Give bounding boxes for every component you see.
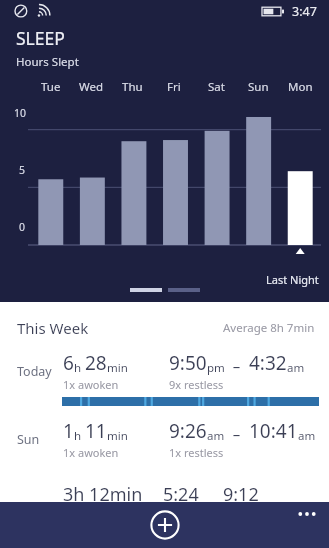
staticText: 6 (63, 350, 74, 376)
staticText: Thu (122, 79, 143, 95)
staticText: 5:24 (163, 482, 199, 507)
button[interactable]: Add sleep entry (145, 505, 185, 545)
staticText: min (107, 360, 128, 376)
staticText: am (298, 428, 316, 444)
staticText: am (287, 360, 305, 376)
button[interactable]: Today (0, 350, 329, 406)
staticText: 1x awoken (63, 377, 119, 392)
staticText: am (207, 428, 225, 444)
staticText: Mon (288, 79, 313, 95)
staticText: Wed (79, 79, 104, 95)
button[interactable]: 3h 12min (0, 482, 329, 507)
staticText: 1x awoken (63, 445, 119, 460)
staticText: – (225, 356, 249, 376)
staticText: – (225, 424, 249, 444)
staticText: Sun (17, 431, 40, 448)
staticText: h (74, 428, 85, 444)
staticText: Tue (41, 79, 61, 95)
staticText: 28 (85, 350, 107, 376)
staticText: SLEEP (16, 26, 65, 50)
staticText: 9x restless (169, 377, 224, 392)
button[interactable]: Sun (0, 418, 329, 460)
staticText: h (74, 360, 85, 376)
staticText: 4:32 (249, 350, 287, 376)
staticText: Average 8h 7min (223, 320, 315, 336)
staticText: 1 (63, 418, 74, 444)
staticText: 3h 12min (63, 482, 143, 507)
staticText: This Week (17, 318, 89, 338)
staticText: Last Night (266, 272, 319, 287)
staticText: Sun (248, 79, 269, 95)
button[interactable]: More options (285, 502, 329, 526)
staticText: 9:50 (169, 350, 207, 376)
staticText: Today (17, 363, 52, 380)
staticText: 9:26 (169, 418, 207, 444)
staticText: min (107, 428, 128, 444)
staticText: Fri (167, 79, 181, 95)
staticText: Sat (208, 79, 225, 95)
staticText: 5 (19, 163, 26, 177)
staticText: 11 (85, 418, 107, 444)
staticText: 9:12 (223, 482, 259, 507)
staticText: 1x restless (169, 445, 224, 460)
staticText: 3:47 (292, 3, 317, 20)
staticText: 0 (19, 220, 26, 234)
staticText: pm (207, 360, 225, 376)
staticText: Hours Slept (16, 54, 79, 70)
staticText: 10:41 (249, 418, 298, 444)
staticText: 10 (14, 106, 27, 120)
